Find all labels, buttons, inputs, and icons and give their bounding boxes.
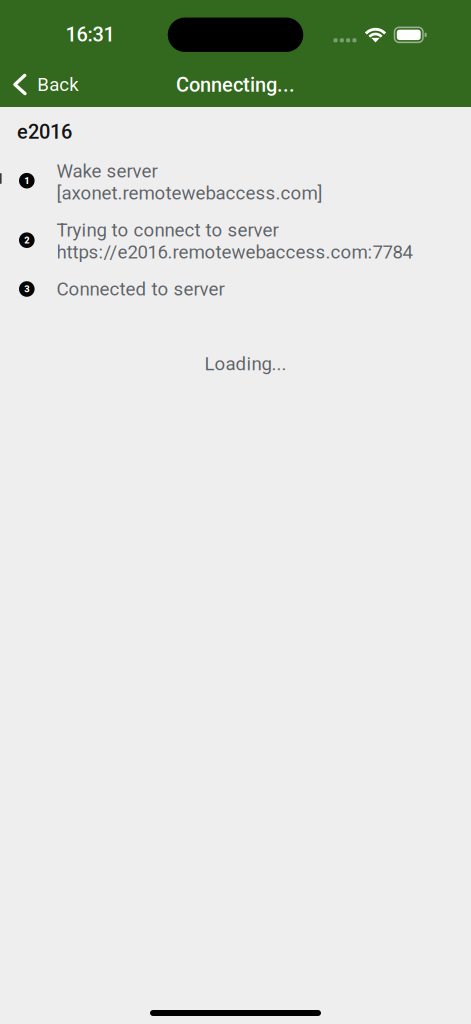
staticText: Connected to server (57, 278, 225, 300)
staticText: 2 (24, 235, 29, 246)
button[interactable]: Back (0, 59, 96, 107)
staticText: Back (37, 74, 78, 95)
staticText: Connecting... (176, 73, 295, 97)
staticText: e2016 (17, 120, 72, 144)
staticText: Trying to connect to server (57, 219, 279, 241)
staticText: 16:31 (65, 23, 114, 46)
staticText: Wake server (57, 160, 158, 182)
staticText: Loading... (204, 353, 286, 375)
staticText: [axonet.remotewebaccess.com] (57, 182, 323, 204)
staticText: 3 (24, 283, 29, 294)
staticText: https://e2016.remotewebaccess.com:7784 (57, 241, 413, 263)
staticText: 1 (24, 175, 29, 186)
